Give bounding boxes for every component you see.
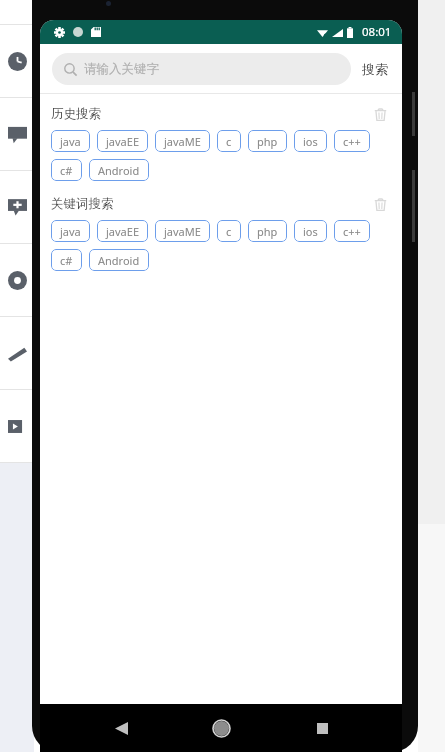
staticText: c# [60,253,73,268]
button[interactable]: c# [51,159,82,181]
button[interactable]: c++ [334,220,370,242]
staticText: 关键词搜索 [51,196,114,212]
staticText: java [60,224,81,239]
button[interactable]: 搜索 [351,55,390,83]
button[interactable]: Recent apps [302,708,342,748]
button[interactable]: c# [51,249,82,271]
staticText: ios [303,134,318,149]
button[interactable]: c++ [334,130,370,152]
button[interactable]: c [217,220,241,242]
button[interactable]: ios [294,220,327,242]
staticText: php [257,134,278,149]
button[interactable]: Back [101,708,141,748]
staticText: 请输入关键字 [84,61,159,77]
staticText: 历史搜索 [51,106,101,122]
staticText: 搜索 [362,61,388,77]
staticText: c++ [343,224,361,239]
staticText: c++ [343,134,361,149]
button[interactable]: java [51,220,90,242]
button[interactable]: Home [201,708,241,748]
staticText: c# [60,163,73,178]
staticText: Android [98,163,140,178]
staticText: ios [303,224,318,239]
staticText: c [226,224,232,239]
button[interactable]: javaME [155,220,210,242]
button[interactable]: 请输入关键字 [52,53,351,85]
staticText: php [257,224,278,239]
staticText: 08:01 [362,24,392,40]
button[interactable]: php [248,130,287,152]
button[interactable]: java [51,130,90,152]
button[interactable]: Android [89,159,149,181]
button[interactable]: c [217,130,241,152]
staticText: javaEE [106,224,139,239]
button[interactable]: javaME [155,130,210,152]
staticText: javaEE [106,134,139,149]
button[interactable]: php [248,220,287,242]
button[interactable]: ios [294,130,327,152]
staticText: javaME [164,134,201,149]
button[interactable]: javaEE [97,220,148,242]
button[interactable]: Clear history [369,193,391,215]
button[interactable]: Clear history [369,103,391,125]
staticText: c [226,134,232,149]
staticText: java [60,134,81,149]
staticText: javaME [164,224,201,239]
staticText: Android [98,253,140,268]
button[interactable]: javaEE [97,130,148,152]
button[interactable]: Android [89,249,149,271]
